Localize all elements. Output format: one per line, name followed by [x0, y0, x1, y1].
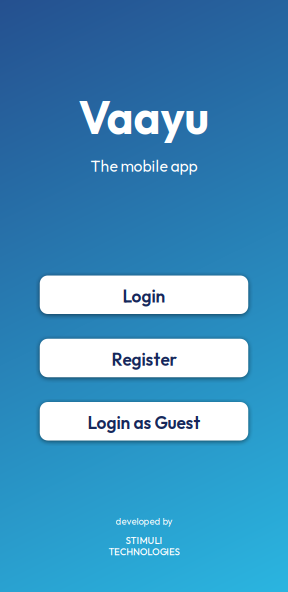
- button[interactable]: Login: [40, 275, 248, 314]
- staticText: The mobile app: [90, 156, 197, 176]
- button[interactable]: Register: [40, 339, 248, 377]
- staticText: Vaayu: [78, 88, 209, 146]
- staticText: Login as Guest: [87, 412, 200, 434]
- staticText: developed by: [115, 515, 172, 527]
- staticText: TECHNOLOGIES: [108, 545, 180, 558]
- staticText: Register: [111, 348, 176, 370]
- button[interactable]: Login as Guest: [40, 402, 248, 440]
- staticText: STIMULI: [125, 534, 162, 546]
- staticText: Login: [122, 285, 165, 307]
